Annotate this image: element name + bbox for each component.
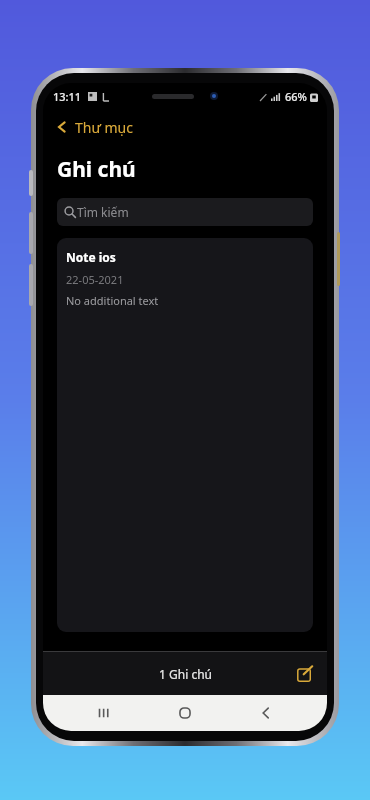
staticText: No additional text — [66, 293, 159, 308]
staticText: 66% — [285, 89, 307, 104]
staticText: Note ios — [66, 249, 116, 265]
staticText: 13:11 — [53, 89, 82, 104]
staticText: Tìm kiếm — [77, 204, 129, 220]
button[interactable]: Tạo ghi chú mới — [291, 660, 319, 688]
button[interactable]: Tìm kiếm — [57, 198, 313, 226]
staticText: Thư mục — [75, 118, 133, 137]
button[interactable]: Back — [246, 695, 286, 731]
staticText: 1 Ghi chú — [159, 666, 212, 682]
button[interactable]: Thư mục — [43, 109, 327, 145]
button[interactable]: Home — [165, 695, 205, 731]
staticText: Ghi chú — [57, 155, 136, 184]
staticText: 22-05-2021 — [66, 272, 124, 287]
button[interactable]: Recents — [84, 695, 124, 731]
button[interactable]: Note ios — [57, 238, 313, 318]
